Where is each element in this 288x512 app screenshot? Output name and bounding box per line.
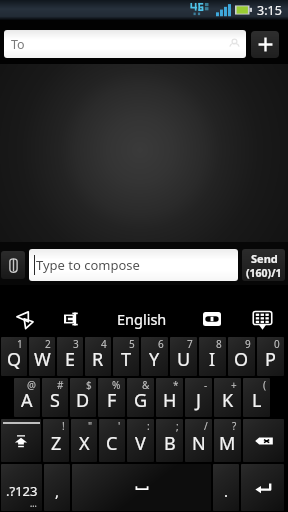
- staticText: D: [76, 388, 90, 413]
- button[interactable]: M: [214, 419, 241, 462]
- staticText: U: [177, 347, 191, 372]
- staticText: (160)/1: [246, 266, 282, 280]
- staticText: M: [219, 431, 236, 456]
- staticText: :: [147, 419, 150, 433]
- staticText: H: [163, 388, 177, 413]
- button[interactable]: Space: [72, 464, 211, 511]
- staticText: N: [192, 431, 206, 456]
- staticText: To: [11, 36, 25, 53]
- staticText: ,: [55, 481, 60, 501]
- button[interactable]: V: [127, 419, 154, 462]
- button[interactable]: Clipboard: [188, 302, 236, 336]
- button[interactable]: .?123: [1, 464, 42, 511]
- button[interactable]: Backspace: [243, 419, 284, 462]
- staticText: ...: [30, 498, 37, 509]
- staticText: Z: [51, 431, 62, 456]
- staticText: X: [79, 431, 90, 456]
- button[interactable]: W: [29, 337, 55, 376]
- staticText: K: [222, 388, 234, 413]
- button[interactable]: Q: [1, 337, 27, 376]
- button[interactable]: Shift: [1, 419, 41, 462]
- button[interactable]: ,: [44, 464, 70, 511]
- button[interactable]: Input settings: [48, 302, 96, 336]
- staticText: %: [112, 378, 121, 392]
- button[interactable]: Add recipient: [251, 31, 279, 58]
- staticText: C: [106, 431, 118, 456]
- staticText: !: [62, 419, 65, 433]
- staticText: 6: [158, 337, 164, 351]
- button[interactable]: J: [185, 378, 212, 417]
- button[interactable]: X: [71, 419, 97, 462]
- staticText: Y: [149, 347, 160, 372]
- button[interactable]: To: [4, 30, 246, 58]
- staticText: B: [164, 431, 176, 456]
- button[interactable]: Z: [43, 419, 69, 462]
- button[interactable]: .: [213, 464, 239, 511]
- button[interactable]: I: [199, 337, 226, 376]
- staticText: J: [196, 388, 201, 413]
- staticText: 5: [129, 337, 135, 351]
- staticText: Type to compose: [36, 256, 140, 274]
- staticText: V: [135, 431, 146, 456]
- staticText: O: [234, 347, 249, 372]
- staticText: E: [65, 347, 76, 372]
- staticText: Send: [251, 251, 278, 266]
- staticText: 3:15: [257, 2, 282, 19]
- staticText: T: [121, 347, 132, 372]
- staticText: ?: [232, 419, 237, 433]
- staticText: ': [118, 419, 121, 433]
- staticText: S: [50, 388, 60, 413]
- button[interactable]: N: [185, 419, 212, 462]
- staticText: I: [209, 347, 216, 372]
- staticText: &: [142, 378, 150, 392]
- staticText: W: [34, 347, 51, 372]
- button[interactable]: T: [113, 337, 139, 376]
- staticText: #: [57, 378, 64, 392]
- button[interactable]: Y: [141, 337, 168, 376]
- button[interactable]: E: [57, 337, 83, 376]
- staticText: G: [134, 388, 148, 413]
- button[interactable]: P: [257, 337, 284, 376]
- staticText: -: [204, 378, 208, 392]
- staticText: (: [263, 378, 266, 392]
- staticText: F: [107, 388, 117, 413]
- button[interactable]: U: [170, 337, 197, 376]
- button[interactable]: Type to compose: [29, 249, 238, 281]
- staticText: +: [231, 378, 237, 392]
- staticText: 9: [245, 337, 251, 351]
- staticText: *: [173, 378, 179, 392]
- staticText: 8: [216, 337, 222, 351]
- button[interactable]: Send: [242, 249, 285, 281]
- staticText: 2: [45, 337, 51, 351]
- button[interactable]: O: [228, 337, 255, 376]
- staticText: ;: [176, 419, 179, 433]
- staticText: A: [21, 388, 33, 413]
- button[interactable]: C: [99, 419, 125, 462]
- button[interactable]: A: [14, 378, 40, 417]
- button[interactable]: Voice input: [0, 302, 48, 336]
- button[interactable]: D: [70, 378, 96, 417]
- button[interactable]: English: [96, 302, 188, 336]
- button[interactable]: B: [156, 419, 183, 462]
- button[interactable]: L: [243, 378, 270, 417]
- staticText: $: [86, 378, 92, 392]
- staticText: 3: [73, 337, 79, 351]
- staticText: .?123: [6, 482, 38, 500]
- staticText: L: [252, 388, 262, 413]
- button[interactable]: K: [214, 378, 241, 417]
- button[interactable]: Enter: [241, 464, 284, 511]
- staticText: .: [224, 481, 229, 501]
- staticText: English: [117, 309, 167, 329]
- button[interactable]: H: [156, 378, 183, 417]
- button[interactable]: Attach: [1, 251, 25, 279]
- staticText: 1: [17, 337, 23, 351]
- button[interactable]: Hide keyboard: [236, 302, 288, 336]
- staticText: @: [27, 378, 36, 392]
- button[interactable]: G: [127, 378, 154, 417]
- staticText: 4: [101, 337, 107, 351]
- button[interactable]: F: [98, 378, 125, 417]
- staticText: 0: [274, 337, 280, 351]
- button[interactable]: R: [85, 337, 111, 376]
- button[interactable]: S: [42, 378, 68, 417]
- staticText: P: [265, 347, 276, 372]
